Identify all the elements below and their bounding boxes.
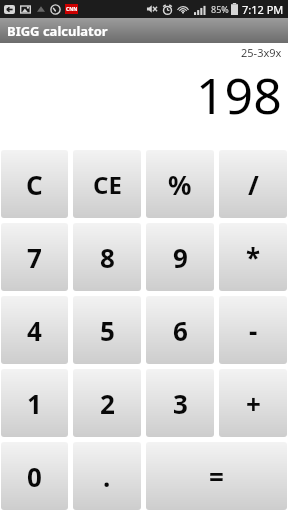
button[interactable]: 8 xyxy=(73,223,141,291)
staticText: - xyxy=(249,313,258,348)
button[interactable]: BIGG calculator xyxy=(0,18,288,43)
staticText: + xyxy=(246,386,261,421)
button[interactable]: % xyxy=(146,150,214,218)
button[interactable]: . xyxy=(73,442,141,510)
staticText: 85% xyxy=(211,3,229,15)
button[interactable]: 9 xyxy=(146,223,214,291)
staticText: 1 xyxy=(27,386,42,421)
button[interactable]: 4 xyxy=(1,296,68,364)
button[interactable]: 5 xyxy=(73,296,141,364)
staticText: 7 xyxy=(27,240,42,275)
staticText: / xyxy=(248,167,259,202)
button[interactable]: = xyxy=(146,442,287,510)
button[interactable]: 3 xyxy=(146,369,214,437)
staticText: 8 xyxy=(100,240,115,275)
staticText: CNN xyxy=(66,6,78,13)
staticText: 198 xyxy=(196,61,282,129)
staticText: 0 xyxy=(27,459,42,494)
button[interactable]: 6 xyxy=(146,296,214,364)
staticText: % xyxy=(168,167,192,202)
button[interactable]: / xyxy=(219,150,287,218)
staticText: . xyxy=(103,459,111,494)
button[interactable]: 0 xyxy=(1,442,68,510)
staticText: 2 xyxy=(100,386,115,421)
staticText: 4 xyxy=(27,313,42,348)
button[interactable]: + xyxy=(219,369,287,437)
staticText: CE xyxy=(93,168,122,201)
staticText: * xyxy=(246,240,261,275)
button[interactable]: 1 xyxy=(1,369,68,437)
staticText: C xyxy=(26,167,43,202)
staticText: 7:12 PM xyxy=(242,2,284,17)
staticText: 3 xyxy=(173,386,188,421)
button[interactable]: - xyxy=(219,296,287,364)
button[interactable]: 7 xyxy=(1,223,68,291)
staticText: 9 xyxy=(173,240,188,275)
staticText: 5 xyxy=(100,313,115,348)
button[interactable]: C xyxy=(1,150,68,218)
staticText: BIGG calculator xyxy=(7,22,108,40)
staticText: 25-3x9x xyxy=(241,45,282,60)
button[interactable]: 2 xyxy=(73,369,141,437)
button[interactable]: CE xyxy=(73,150,141,218)
button[interactable]: * xyxy=(219,223,287,291)
staticText: 6 xyxy=(173,313,188,348)
staticText: = xyxy=(209,459,224,494)
